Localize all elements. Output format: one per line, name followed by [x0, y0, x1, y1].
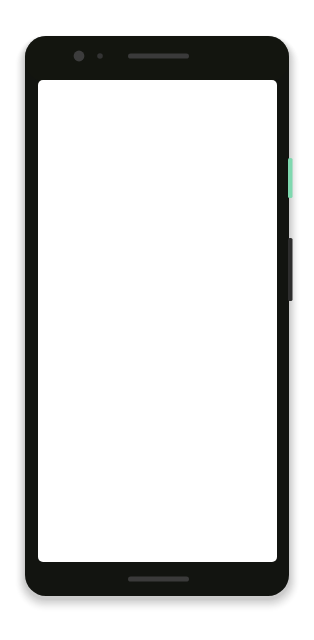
- other: Phone device mockup with blank screen: [0, 0, 314, 640]
